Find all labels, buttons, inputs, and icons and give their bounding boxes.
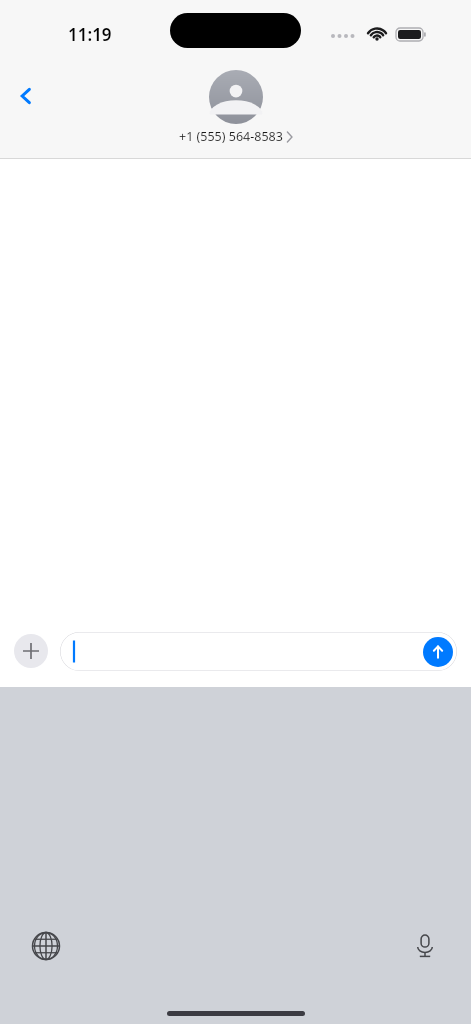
button[interactable]: +1 (555) 564-8583 bbox=[179, 70, 293, 145]
button[interactable]: Send bbox=[60, 632, 457, 671]
button[interactable]: Switch keyboard language bbox=[26, 926, 66, 966]
button[interactable]: Voice input bbox=[405, 926, 445, 966]
staticText: +1 (555) 564-8583 bbox=[179, 128, 283, 145]
staticText: 11:19 bbox=[68, 23, 112, 46]
button[interactable]: Back bbox=[6, 76, 46, 116]
button[interactable]: Add attachment bbox=[14, 634, 48, 668]
button[interactable]: Send bbox=[423, 637, 453, 667]
